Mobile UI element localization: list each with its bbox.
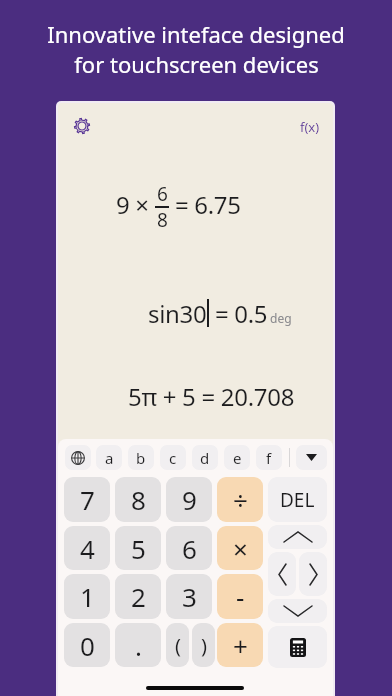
button[interactable]	[71, 115, 92, 136]
button[interactable]	[299, 552, 327, 596]
button[interactable]: (	[166, 623, 189, 667]
staticText: = 6.75	[169, 188, 241, 221]
staticText: f(x)	[300, 118, 320, 136]
button[interactable]: 1	[64, 574, 110, 619]
button[interactable]: 8	[115, 477, 161, 522]
button[interactable]: 4	[64, 526, 110, 570]
button[interactable]: f	[256, 445, 282, 470]
button[interactable]: 6	[166, 526, 212, 570]
button[interactable]: a	[96, 445, 122, 470]
staticText: deg	[270, 310, 292, 326]
button[interactable]: .	[115, 623, 161, 667]
button[interactable]	[268, 626, 327, 668]
staticText: .	[135, 628, 142, 663]
staticText: 9 ×	[116, 188, 155, 221]
staticText: for touchscreen devices	[74, 49, 319, 79]
button[interactable]: 5	[115, 526, 161, 570]
staticText: sin30	[148, 297, 207, 330]
staticText: 8	[131, 482, 146, 517]
button[interactable]: )	[192, 623, 215, 667]
button[interactable]: ×	[217, 526, 263, 570]
button[interactable]	[296, 445, 327, 470]
staticText: d	[200, 448, 210, 468]
button[interactable]: 2	[115, 574, 161, 619]
staticText: 0	[80, 628, 95, 663]
button[interactable]: 9	[166, 477, 212, 522]
button[interactable]	[268, 525, 327, 549]
staticText: = 0.5	[209, 297, 268, 330]
button[interactable]: -	[217, 574, 263, 619]
button[interactable]: d	[192, 445, 218, 470]
staticText: 5π + 5 = 20.708	[128, 380, 295, 413]
button[interactable]: c	[160, 445, 186, 470]
staticText: -	[236, 579, 245, 614]
staticText: 1	[80, 579, 95, 614]
button[interactable]	[268, 552, 296, 596]
button[interactable]: f(x)	[294, 116, 326, 138]
staticText: e	[233, 448, 242, 468]
button[interactable]: 0	[64, 623, 110, 667]
button[interactable]: DEL	[268, 477, 327, 522]
button[interactable]: 7	[64, 477, 110, 522]
staticText: 2	[131, 579, 146, 614]
staticText: f	[266, 448, 272, 468]
button[interactable]	[268, 599, 327, 623]
staticText: c	[169, 448, 177, 468]
button[interactable]: +	[217, 623, 263, 667]
staticText: 3	[182, 579, 197, 614]
staticText: 5	[131, 531, 146, 566]
staticText: 7	[80, 482, 95, 517]
staticText: DEL	[280, 487, 315, 513]
button[interactable]: 3	[166, 574, 212, 619]
staticText: )	[201, 632, 207, 659]
button[interactable]: ÷	[217, 477, 263, 522]
button[interactable]: e	[224, 445, 250, 470]
staticText: 6	[157, 181, 168, 207]
staticText: +	[233, 628, 248, 663]
staticText: 6	[182, 531, 197, 566]
staticText: 4	[80, 531, 95, 566]
button[interactable]	[65, 445, 91, 470]
staticText: ×	[233, 531, 248, 566]
staticText: 9	[182, 482, 197, 517]
staticText: Innovative inteface designed	[47, 19, 345, 49]
staticText: b	[136, 448, 146, 468]
staticText: 8	[157, 207, 168, 227]
staticText: ÷	[233, 482, 248, 517]
button[interactable]: b	[128, 445, 154, 470]
staticText: (	[175, 632, 181, 659]
staticText: a	[105, 448, 114, 468]
